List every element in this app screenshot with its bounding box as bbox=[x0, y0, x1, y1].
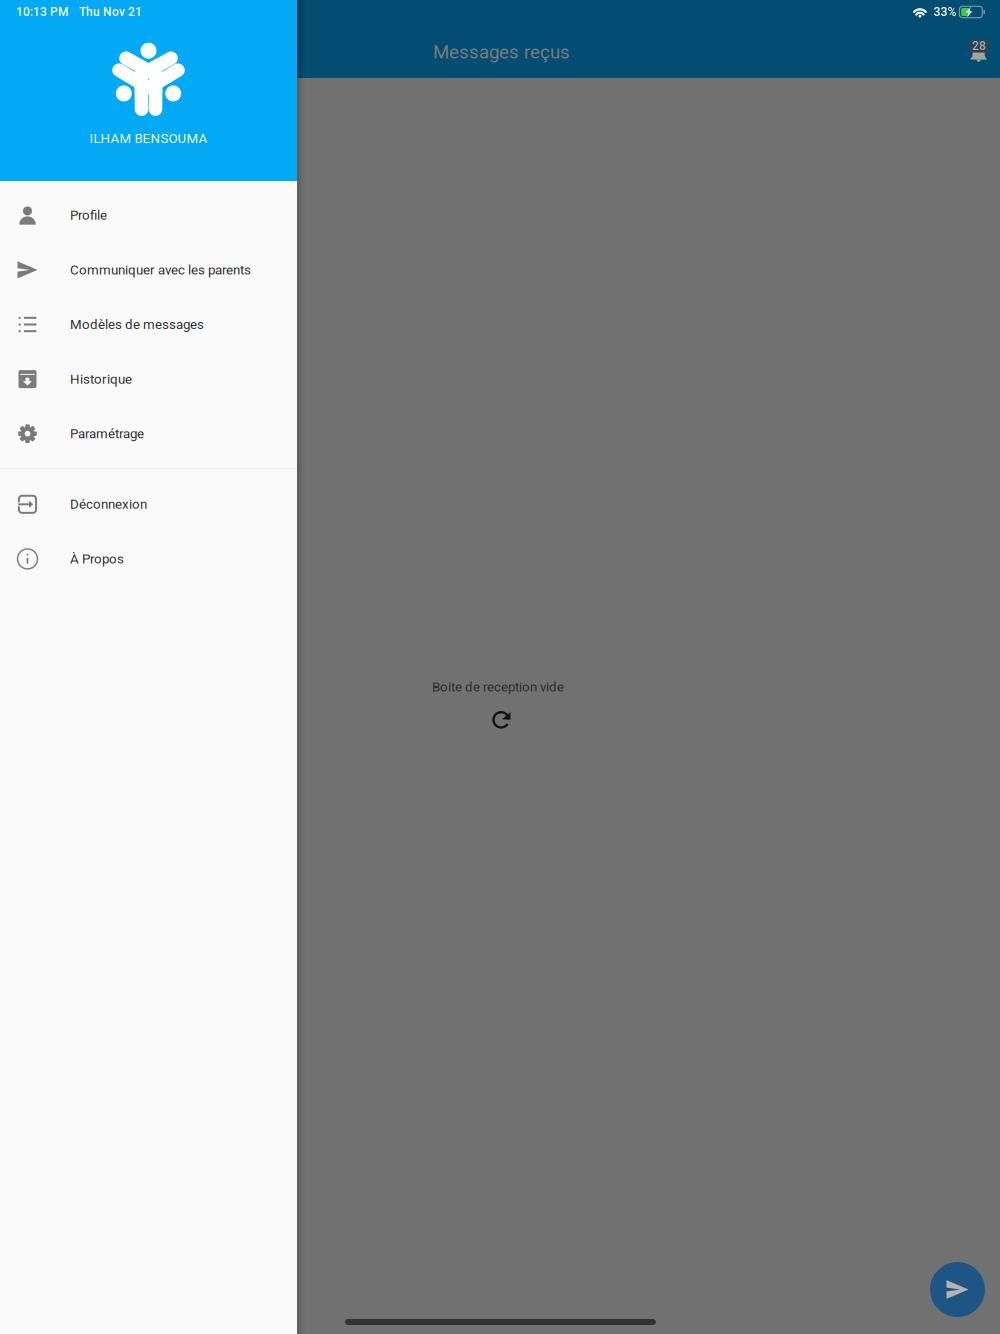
button[interactable]: Communiquer avec les parents bbox=[0, 243, 297, 297]
button[interactable]: Notifications bbox=[969, 31, 989, 61]
staticText: 10:13 PM bbox=[16, 5, 68, 19]
staticText: Paramétrage bbox=[70, 426, 144, 441]
staticText: Messages reçus bbox=[433, 41, 570, 63]
staticText: Boite de reception vide bbox=[432, 679, 564, 695]
staticText: Modèles de messages bbox=[70, 317, 204, 332]
button[interactable]: Modèles de messages bbox=[0, 297, 297, 352]
staticText: Historique bbox=[70, 371, 132, 387]
button[interactable]: Historique bbox=[0, 352, 297, 406]
staticText: ILHAM BENSOUMA bbox=[89, 131, 207, 146]
staticText: Déconnexion bbox=[70, 496, 147, 512]
button[interactable]: Paramétrage bbox=[0, 406, 297, 461]
staticText: Thu Nov 21 bbox=[79, 5, 142, 19]
button[interactable]: Profile bbox=[0, 188, 297, 243]
staticText: Profile bbox=[70, 207, 107, 223]
staticText: 28 bbox=[972, 39, 986, 53]
staticText: Communiquer avec les parents bbox=[70, 262, 251, 278]
button[interactable]: À Propos bbox=[0, 532, 297, 586]
staticText: 33% bbox=[933, 5, 956, 19]
button[interactable]: Déconnexion bbox=[0, 477, 297, 532]
staticText: À Propos bbox=[70, 551, 124, 567]
button[interactable]: Compose message bbox=[930, 1262, 985, 1317]
